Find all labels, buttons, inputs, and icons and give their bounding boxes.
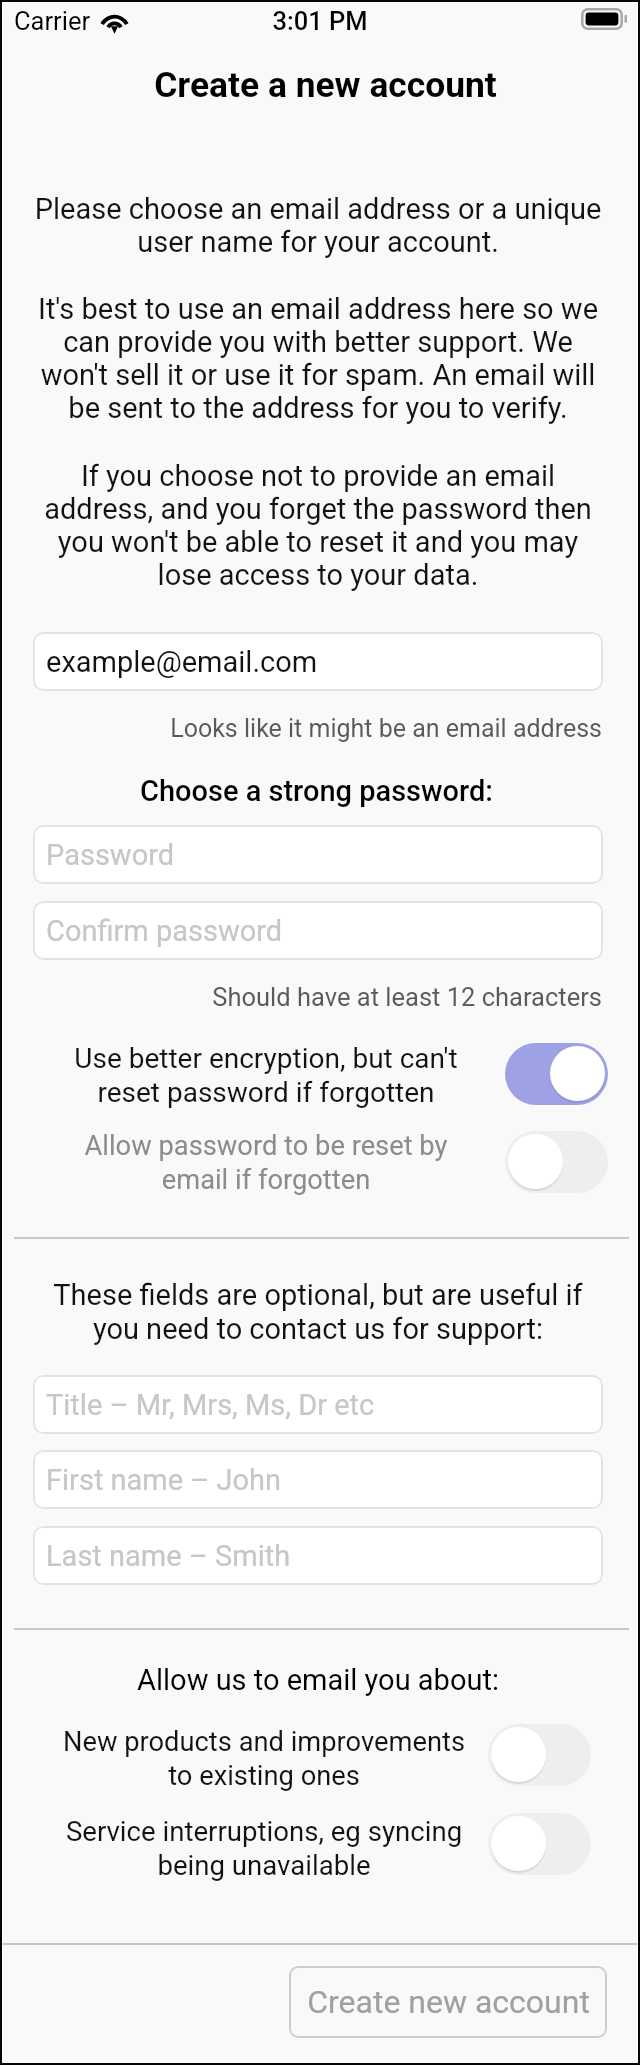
staticText: Service interruptions, eg syncing being … — [61, 1815, 467, 1882]
staticText: example@email.com — [46, 645, 318, 679]
staticText: Last name – Smith — [46, 1539, 291, 1573]
button[interactable]: Use better encryption — [505, 1043, 608, 1105]
button[interactable]: Last name – Smith — [33, 1526, 603, 1585]
button[interactable]: Allow password reset by email — [505, 1131, 608, 1193]
staticText: 3:01 PM — [272, 6, 368, 32]
button[interactable]: Title – Mr, Mrs, Ms, Dr etc — [33, 1375, 603, 1434]
staticText: Create new account — [307, 1983, 590, 2021]
button[interactable]: New products and improvements — [488, 1724, 591, 1786]
staticText: Choose a strong password: — [30, 774, 603, 808]
staticText: Title – Mr, Mrs, Ms, Dr etc — [46, 1388, 375, 1422]
button[interactable]: Service interruptions — [488, 1813, 591, 1875]
staticText: Use better encryption, but can't reset p… — [64, 1042, 468, 1109]
staticText: It's best to use an email address here s… — [30, 292, 606, 425]
button[interactable]: First name – John — [33, 1450, 603, 1509]
staticText: Looks like it might be an email address — [33, 714, 602, 743]
button[interactable]: example@email.com — [33, 632, 603, 691]
staticText: These fields are optional, but are usefu… — [30, 1278, 606, 1346]
staticText: Create a new account — [154, 64, 497, 100]
staticText: Should have at least 12 characters — [33, 982, 602, 1012]
staticText: Allow us to email you about: — [30, 1663, 606, 1697]
button[interactable]: Password — [33, 825, 603, 884]
button[interactable]: Confirm password — [33, 901, 603, 960]
staticText: First name – John — [46, 1463, 282, 1497]
button[interactable]: Create new account — [289, 1966, 607, 2038]
staticText: Please choose an email address or a uniq… — [30, 192, 606, 259]
staticText: If you choose not to provide an email ad… — [30, 459, 606, 592]
staticText: Allow password to be reset by email if f… — [64, 1130, 468, 1196]
staticText: New products and improvements to existin… — [61, 1726, 467, 1792]
staticText: Carrier — [14, 6, 91, 32]
staticText: Confirm password — [46, 914, 283, 948]
staticText: Password — [46, 838, 175, 872]
